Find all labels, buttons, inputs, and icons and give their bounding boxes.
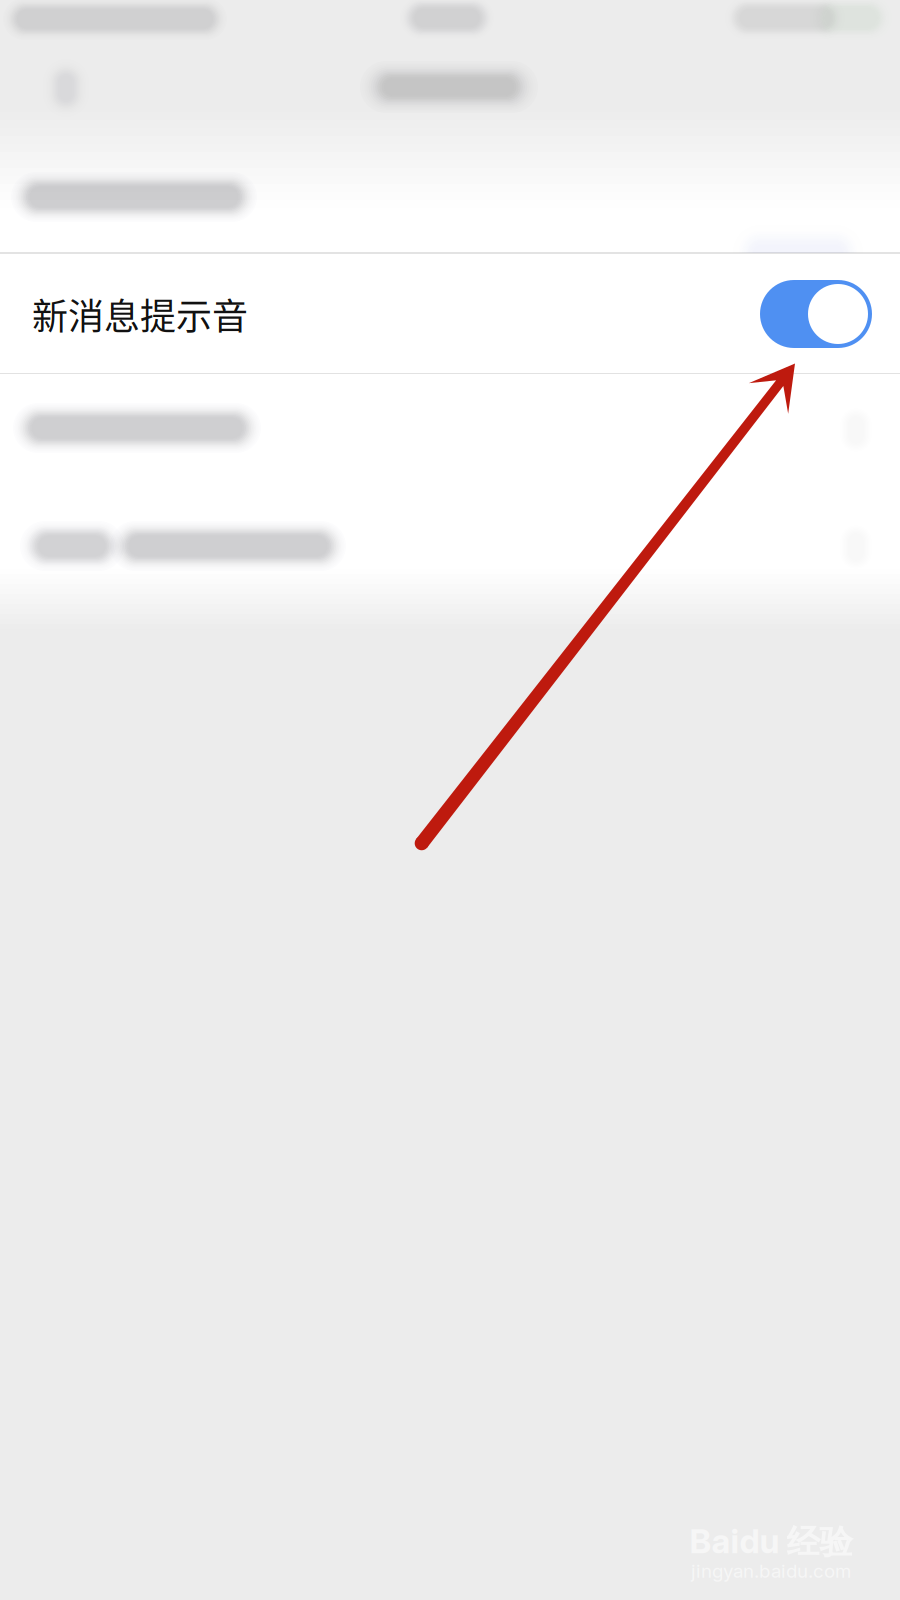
staticText: 新消息提示音 xyxy=(32,288,248,340)
staticText: jingyan.baidu.com xyxy=(691,1560,851,1582)
button[interactable]: Back xyxy=(0,0,900,1600)
staticText: Baidu 经验 xyxy=(689,1521,852,1563)
button[interactable]: 新消息提示音 xyxy=(0,255,900,373)
button[interactable] xyxy=(0,0,900,1600)
button[interactable] xyxy=(0,0,900,1600)
button[interactable] xyxy=(0,0,900,1600)
